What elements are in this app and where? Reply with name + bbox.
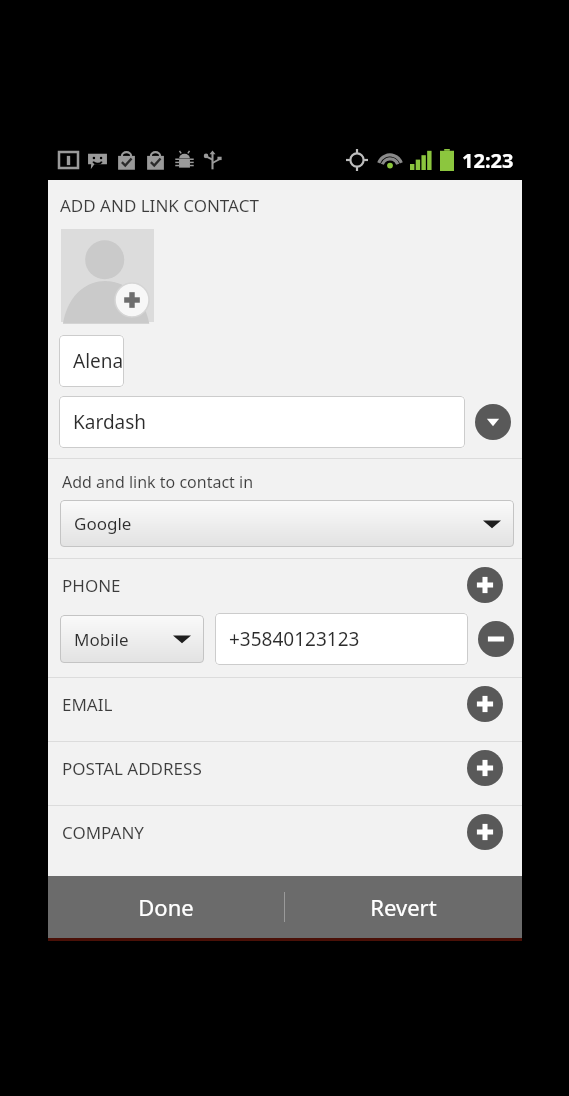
button[interactable]: Expand name fields xyxy=(475,404,511,440)
staticText: Mobile xyxy=(74,628,129,651)
button[interactable]: Add company xyxy=(467,814,503,850)
staticText: COMPANY xyxy=(62,821,144,844)
staticText: Kardash xyxy=(73,409,147,435)
button[interactable]: Add phone xyxy=(467,567,503,603)
button[interactable]: +35840123123 xyxy=(215,613,468,665)
staticText: +35840123123 xyxy=(229,626,360,652)
staticText: Add and link to contact in xyxy=(62,471,254,493)
button[interactable]: Done xyxy=(48,876,284,938)
staticText: ADD AND LINK CONTACT xyxy=(60,194,259,217)
staticText: Google xyxy=(74,512,132,535)
staticText: PHONE xyxy=(62,574,121,597)
button[interactable]: Add postal address xyxy=(467,750,503,786)
button[interactable]: Add photo xyxy=(61,229,154,322)
staticText: EMAIL xyxy=(62,693,113,716)
button[interactable]: Add email xyxy=(467,686,503,722)
button[interactable]: Alena xyxy=(59,335,124,387)
staticText: POSTAL ADDRESS xyxy=(62,757,202,780)
button[interactable]: Revert xyxy=(285,876,522,938)
staticText: Alena xyxy=(73,348,124,374)
button[interactable]: Remove phone xyxy=(478,621,514,657)
button[interactable]: Mobile xyxy=(60,615,204,663)
button[interactable]: Google xyxy=(60,500,514,547)
button[interactable]: Kardash xyxy=(59,396,465,448)
staticText: 12:23 xyxy=(462,147,514,174)
staticText: Revert xyxy=(370,892,437,922)
staticText: Done xyxy=(138,892,194,922)
